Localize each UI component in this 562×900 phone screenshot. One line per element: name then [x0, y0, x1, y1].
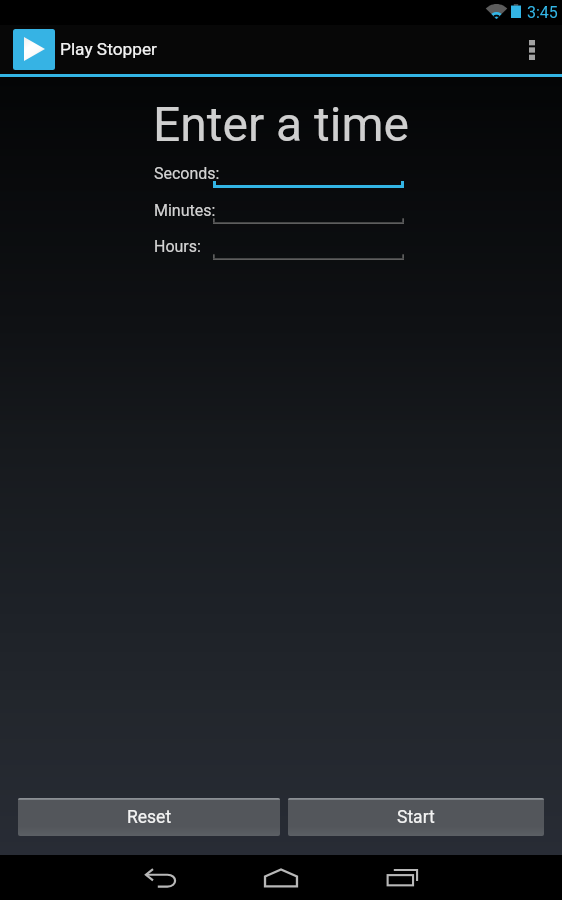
staticText: Minutes:	[154, 201, 216, 220]
button[interactable]: Seconds input field	[213, 164, 404, 188]
button[interactable]: More options	[507, 25, 562, 74]
button[interactable]: Hours input field	[213, 237, 404, 261]
button[interactable]: Home	[241, 855, 321, 900]
button[interactable]: Recent apps	[362, 855, 442, 900]
staticText: Start	[397, 807, 435, 828]
button[interactable]: Start	[288, 798, 544, 836]
button[interactable]: Back	[121, 855, 201, 900]
staticText: Seconds:	[154, 164, 220, 183]
staticText: Play Stopper	[60, 39, 157, 59]
staticText: Reset	[127, 807, 172, 828]
button[interactable]: Reset	[18, 798, 280, 836]
staticText: Enter a time	[0, 96, 562, 152]
staticText: Hours:	[154, 237, 201, 256]
button[interactable]: Minutes input field	[213, 201, 404, 225]
staticText: 3:45	[527, 3, 558, 22]
